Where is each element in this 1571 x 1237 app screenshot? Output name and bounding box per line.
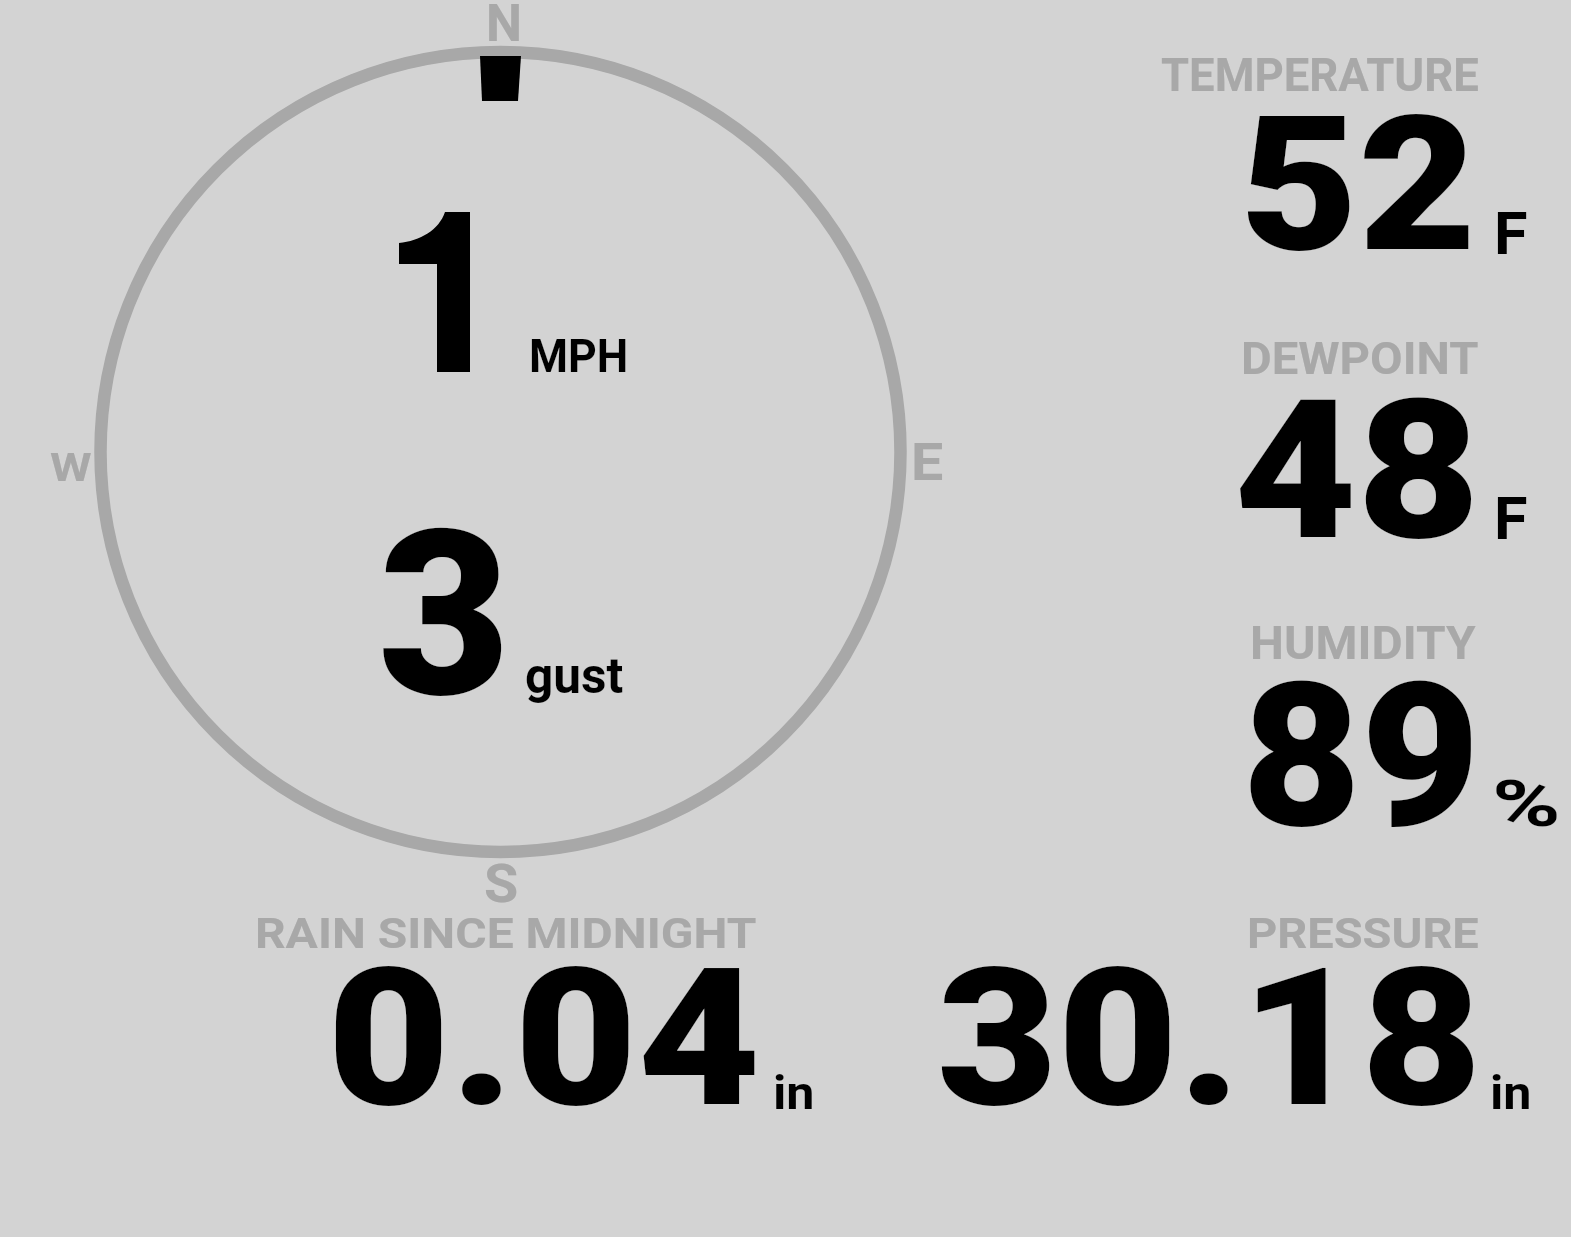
staticText: 30.18 (937, 927, 1482, 1142)
staticText: PRESSURE (1247, 909, 1480, 958)
staticText: S (484, 852, 518, 915)
staticText: gust (525, 646, 624, 705)
staticText: MPH (529, 329, 629, 383)
button[interactable]: DEWPOINT (1140, 325, 1571, 555)
staticText: 48 (1234, 358, 1481, 584)
staticText: F (1494, 199, 1528, 268)
staticText: HUMIDITY (1250, 616, 1476, 670)
staticText: RAIN SINCE MIDNIGHT (255, 909, 757, 958)
staticText: in (773, 1066, 815, 1120)
staticText: TEMPERATURE (1161, 48, 1479, 102)
staticText: W (50, 445, 93, 491)
staticText: % (1492, 767, 1562, 842)
staticText: DEWPOINT (1241, 332, 1479, 385)
button[interactable]: HUMIDITY (1140, 610, 1571, 840)
staticText: F (1494, 484, 1528, 553)
staticText: E (911, 433, 944, 493)
staticText: in (1490, 1066, 1532, 1120)
button[interactable]: RAIN SINCE MIDNIGHT (240, 900, 840, 1115)
button[interactable]: 3 (340, 490, 670, 710)
staticText: 89 (1242, 639, 1480, 869)
staticText: N (486, 0, 523, 54)
staticText: 0.04 (327, 926, 761, 1141)
button[interactable]: Wind direction (478, 54, 523, 103)
button[interactable]: MPH (340, 170, 670, 385)
staticText: 3 (378, 481, 510, 701)
button[interactable]: PRESSURE (900, 900, 1550, 1115)
staticText: 52 (1240, 75, 1477, 295)
button[interactable]: TEMPERATURE (1140, 40, 1571, 270)
